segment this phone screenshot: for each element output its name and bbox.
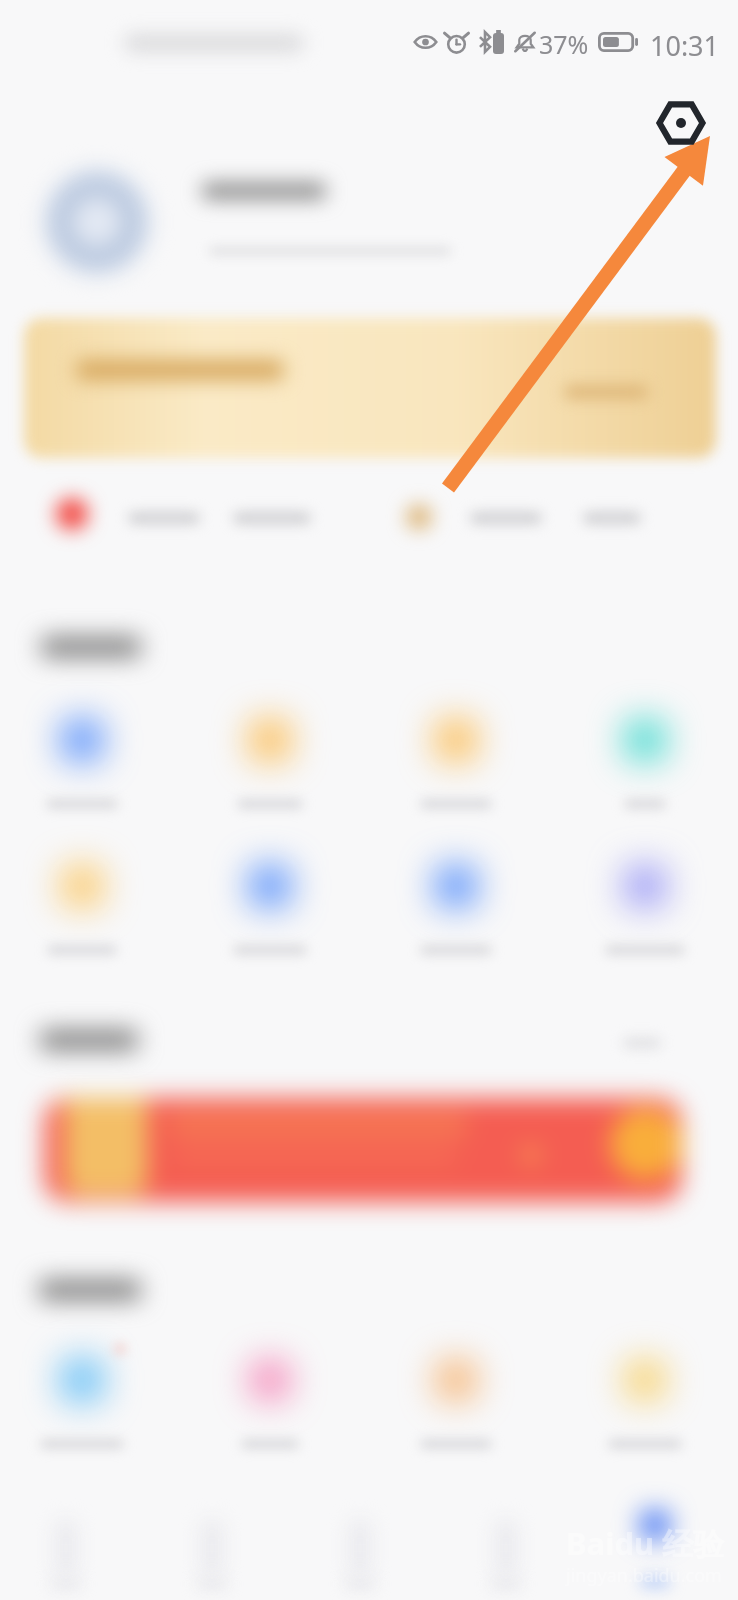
button[interactable]: Promotion banner	[44, 1098, 682, 1202]
button[interactable]: Tab 5	[583, 1476, 729, 1600]
button[interactable]: App shortcut	[0, 826, 172, 966]
button[interactable]: See more	[592, 1013, 692, 1073]
staticText: 37%	[539, 27, 589, 57]
button[interactable]: App shortcut	[180, 826, 360, 966]
button[interactable]: App shortcut	[366, 680, 546, 820]
button[interactable]: App shortcut	[180, 680, 360, 820]
button[interactable]: App shortcut	[555, 1320, 735, 1460]
staticText: Baidu 经验	[566, 1522, 725, 1564]
button[interactable]: App shortcut	[180, 1320, 360, 1460]
button[interactable]: App shortcut	[366, 826, 546, 966]
button[interactable]: App shortcut	[0, 1320, 172, 1460]
button[interactable]: Wallet	[380, 478, 720, 558]
button[interactable]: Profile	[20, 150, 500, 290]
staticText: jingyan.baidu.com	[566, 1563, 722, 1588]
button[interactable]: App shortcut	[0, 680, 172, 820]
button[interactable]: Orders	[16, 478, 366, 558]
button[interactable]: App shortcut	[366, 1320, 546, 1460]
button[interactable]: App shortcut	[555, 680, 735, 820]
button[interactable]: Membership banner	[24, 318, 716, 458]
staticText: 10:31	[650, 27, 720, 57]
button[interactable]: App shortcut	[555, 826, 735, 966]
